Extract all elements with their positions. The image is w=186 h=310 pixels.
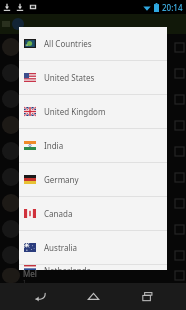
staticText: Fr [23,38,31,49]
staticText: 1 [23,75,26,82]
button[interactable]: Recent apps [133,283,161,310]
button[interactable]: India [19,129,167,162]
staticText: 20:14 [162,2,183,13]
button[interactable]: Germany [19,163,167,196]
button[interactable]: Netherlands [19,265,167,270]
staticText: Ry [23,142,33,153]
button[interactable]: United States [19,61,167,94]
staticText: Sh [23,246,33,257]
staticText: Netherlands [44,265,91,270]
staticText: Za [23,64,33,75]
button[interactable]: Home [79,283,107,310]
button[interactable]: Canada [19,197,167,230]
button[interactable]: All Countries [19,27,167,60]
staticText: 1 [23,279,26,283]
staticText: United States [44,72,95,83]
staticText: India [44,140,64,151]
button[interactable]: United Kingdom [19,95,167,128]
staticText: Australia [44,242,78,253]
button[interactable]: Australia [19,231,167,264]
button[interactable]: Back [26,283,54,310]
staticText: Germany [44,174,79,185]
staticText: Canada [44,208,73,219]
staticText: 1 [23,205,26,212]
staticText: Mel [23,268,37,279]
staticText: United Kingdom [44,106,106,117]
staticText: 1 [23,179,26,186]
staticText: 1 [23,101,26,108]
staticText: All Countries [44,38,92,49]
staticText: 1 [23,127,26,134]
staticText: El [23,220,30,231]
